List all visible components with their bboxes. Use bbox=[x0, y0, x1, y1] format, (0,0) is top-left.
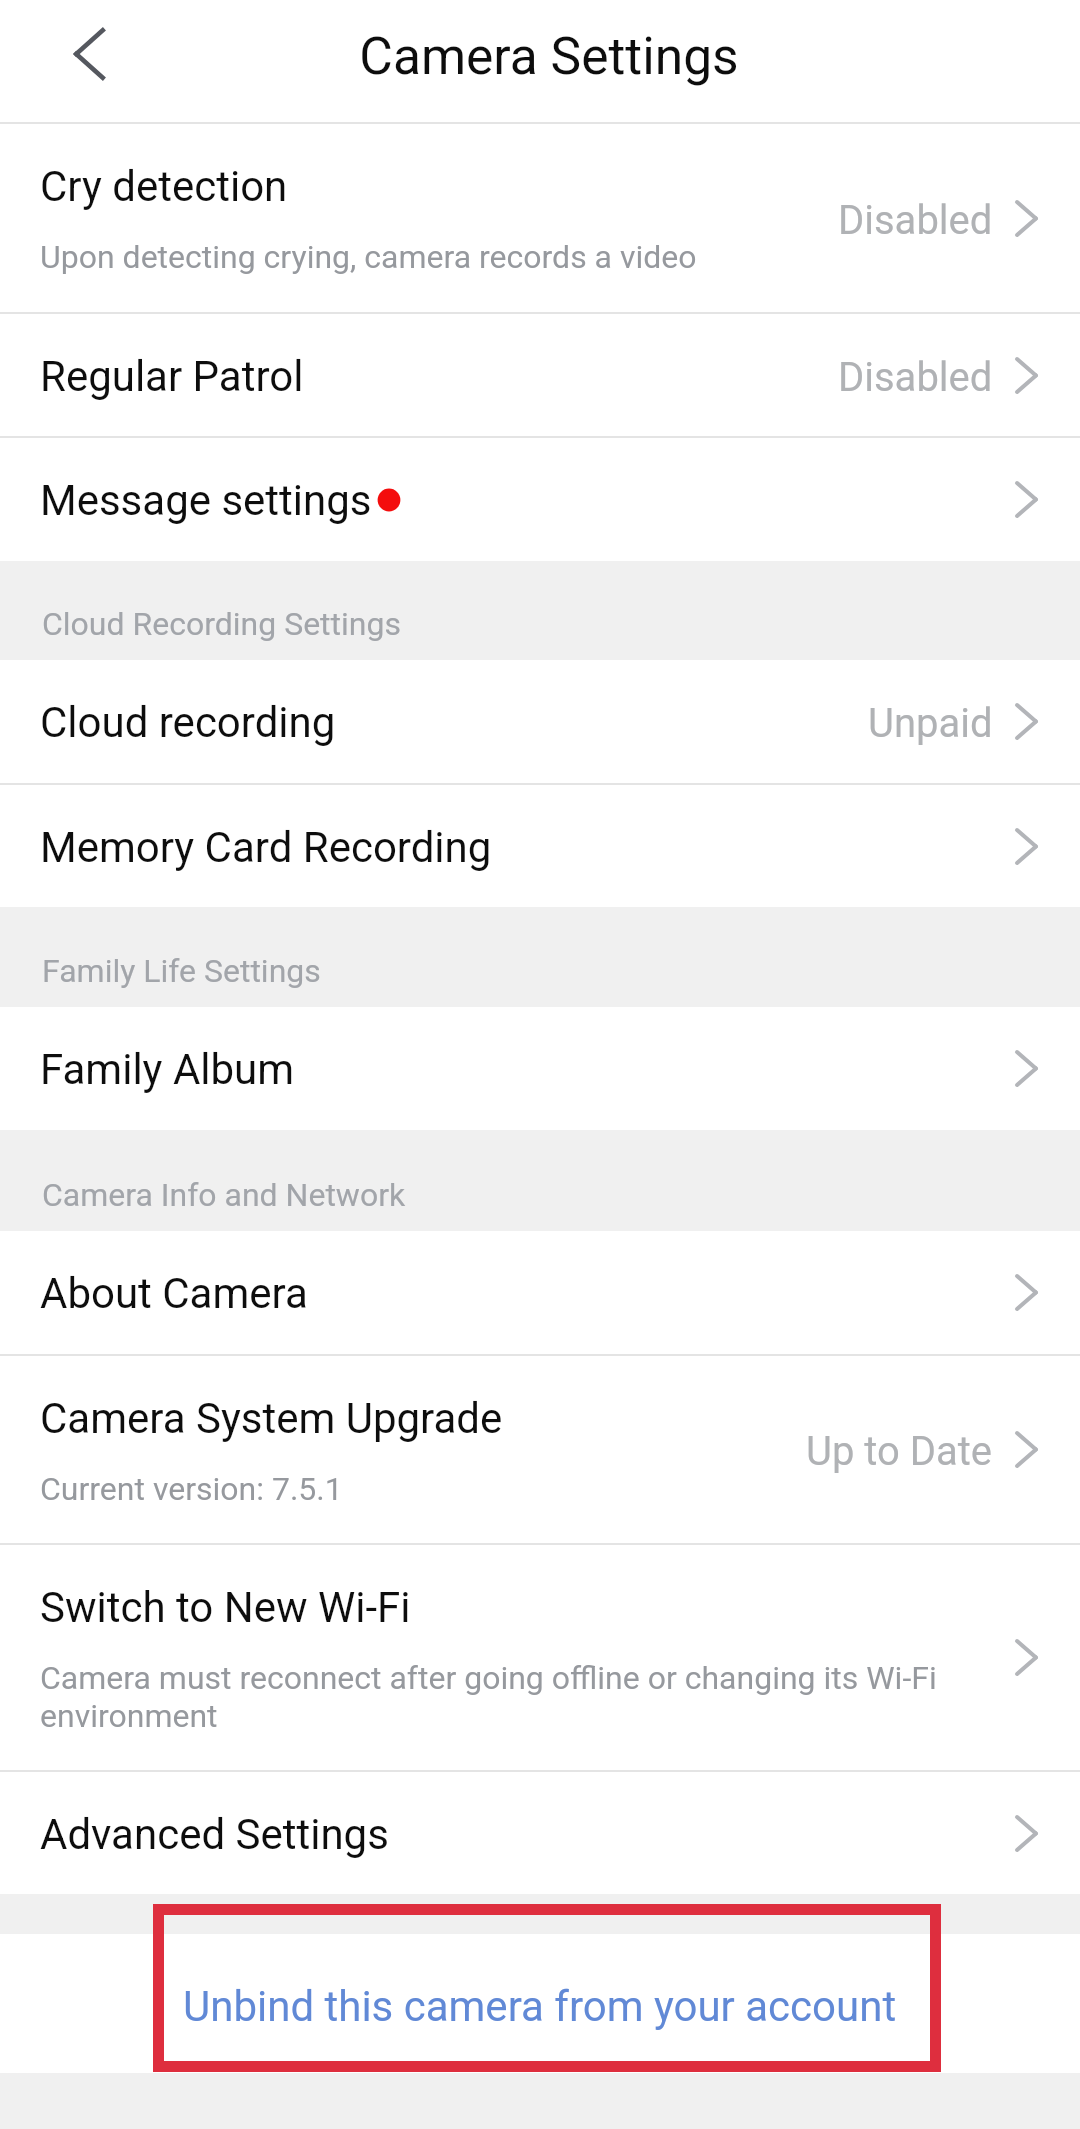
staticText: Family Life Settings bbox=[42, 952, 321, 990]
staticText: Camera must reconnect after going offlin… bbox=[40, 1659, 1015, 1735]
staticText: Cloud Recording Settings bbox=[42, 605, 401, 643]
staticText: Camera System Upgrade bbox=[40, 1394, 503, 1443]
staticText: Message settings bbox=[40, 476, 372, 525]
staticText: Cry detection bbox=[40, 162, 288, 211]
staticText: Family Album bbox=[40, 1045, 295, 1094]
button[interactable]: Cry detection bbox=[0, 124, 1080, 312]
button[interactable]: Back bbox=[49, 14, 129, 94]
staticText: Disabled bbox=[838, 197, 993, 244]
staticText: Advanced Settings bbox=[40, 1810, 389, 1859]
button[interactable]: Switch to New Wi-Fi bbox=[0, 1545, 1080, 1770]
button[interactable]: Memory Card Recording bbox=[0, 785, 1080, 907]
button[interactable]: Family Album bbox=[0, 1007, 1080, 1130]
staticText: Switch to New Wi-Fi bbox=[40, 1583, 411, 1632]
button[interactable]: Camera System Upgrade bbox=[0, 1356, 1080, 1543]
staticText: Cloud recording bbox=[40, 698, 336, 747]
button[interactable]: Unbind this camera from your account bbox=[0, 1934, 1080, 2073]
staticText: Camera Settings bbox=[359, 26, 739, 86]
staticText: Unbind this camera from your account bbox=[183, 1982, 897, 2031]
staticText: Disabled bbox=[838, 354, 993, 401]
staticText: Memory Card Recording bbox=[40, 823, 492, 872]
staticText: Unpaid bbox=[868, 700, 993, 747]
staticText: About Camera bbox=[40, 1269, 308, 1318]
staticText: Current version: 7.5.1 bbox=[40, 1470, 343, 1508]
button[interactable]: Advanced Settings bbox=[0, 1772, 1080, 1894]
button[interactable]: Message settings bbox=[0, 438, 1080, 561]
staticText: Upon detecting crying, camera records a … bbox=[40, 238, 697, 276]
button[interactable]: Cloud recording bbox=[0, 660, 1080, 783]
staticText: Camera Info and Network bbox=[42, 1176, 406, 1214]
button[interactable]: Regular Patrol bbox=[0, 314, 1080, 436]
staticText: Up to Date bbox=[806, 1428, 993, 1475]
button[interactable]: About Camera bbox=[0, 1231, 1080, 1354]
staticText: Regular Patrol bbox=[40, 352, 304, 401]
